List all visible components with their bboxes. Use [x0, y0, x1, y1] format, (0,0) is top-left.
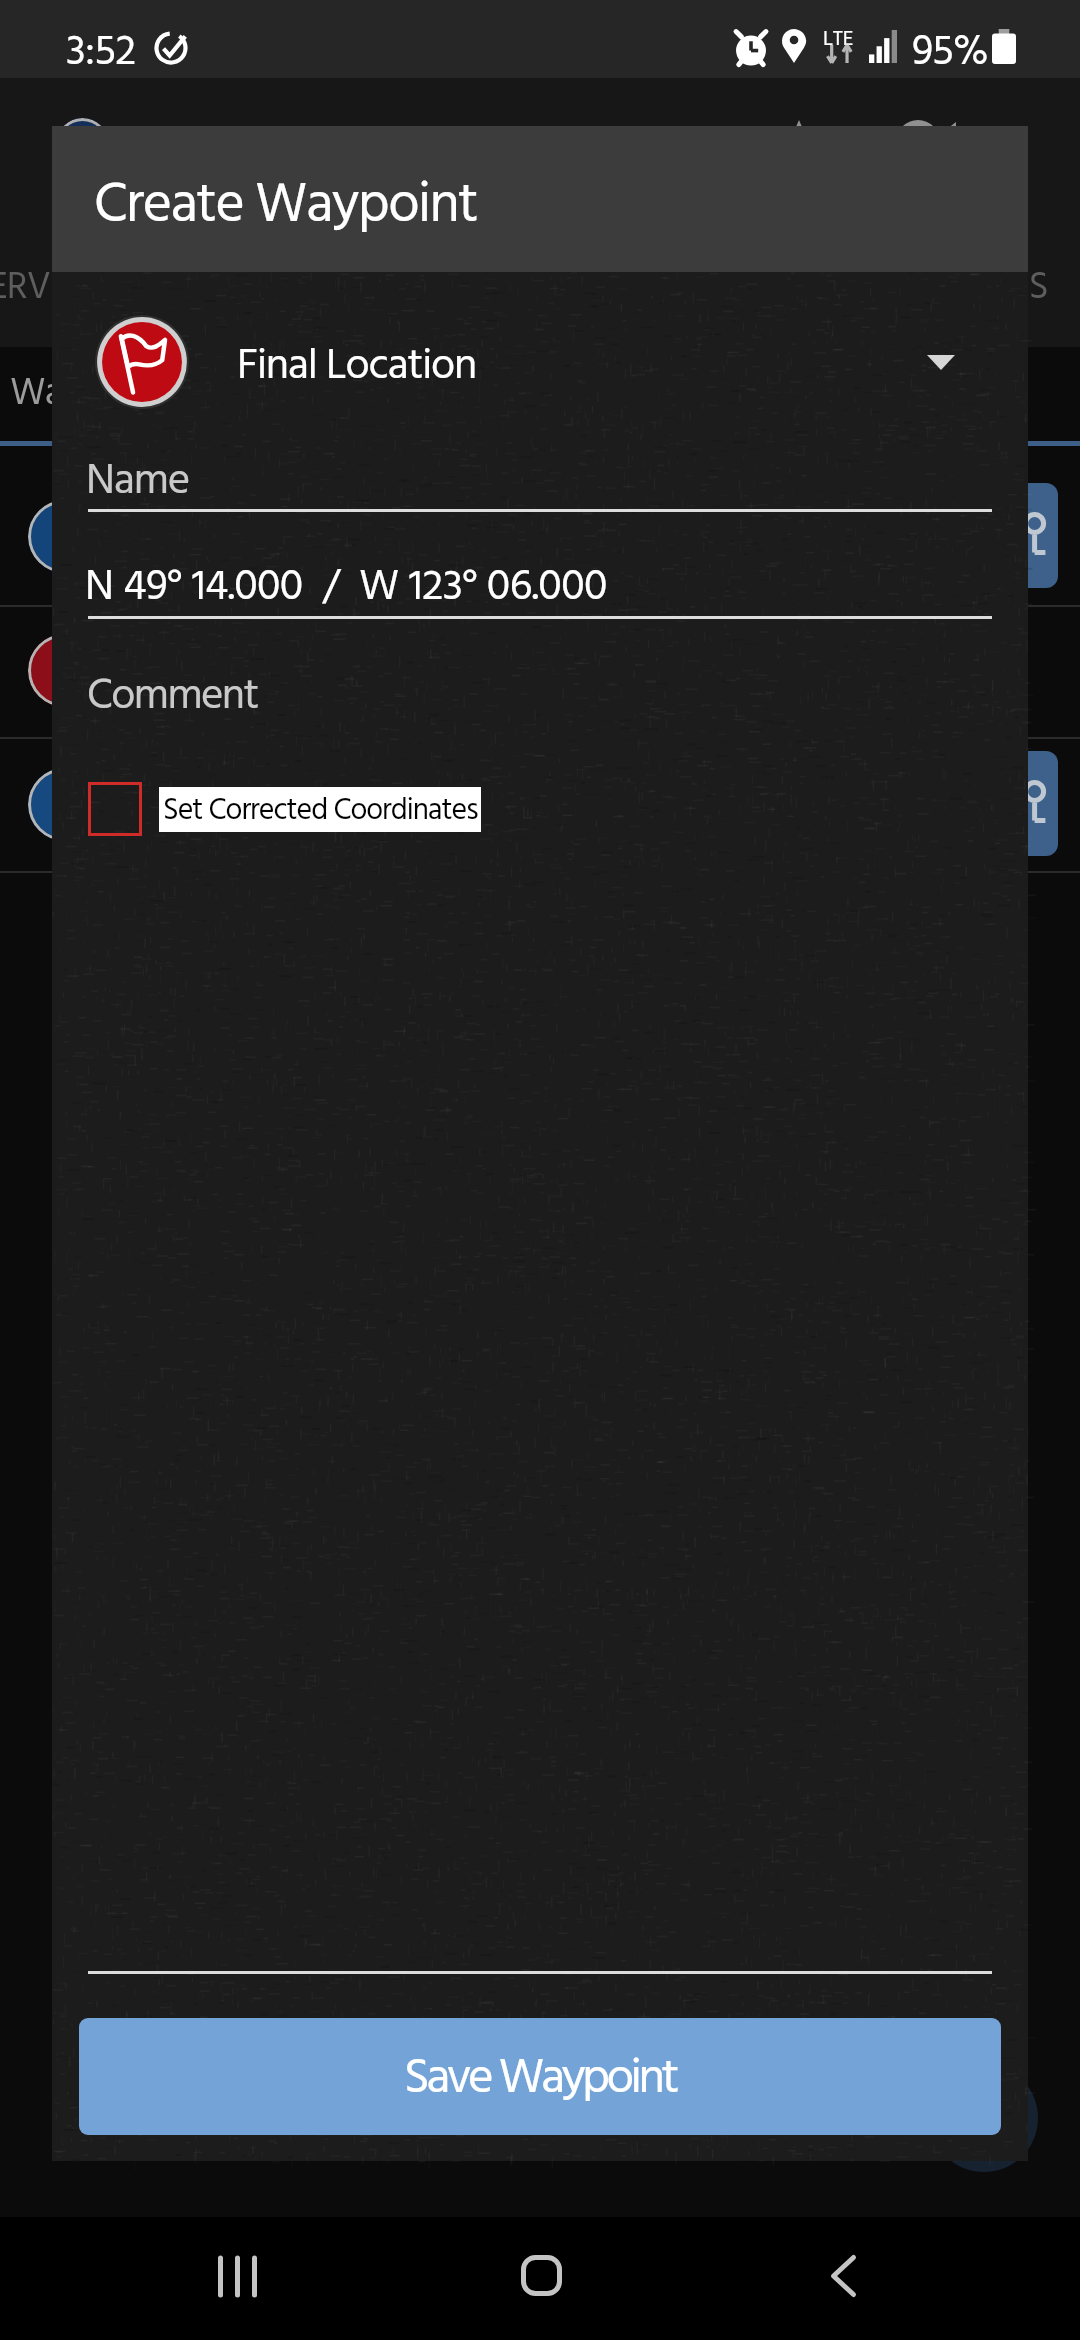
- staticText: RESERVE: [0, 258, 68, 319]
- staticText: Save Waypoint: [404, 2040, 677, 2118]
- staticText: Name: [86, 448, 190, 517]
- staticText: FOUND: [430, 258, 546, 319]
- staticText: N 49° 14.000 / W 123° 06.000: [85, 554, 607, 623]
- staticText: LTE: [823, 23, 854, 57]
- staticText: 3:52: [66, 20, 136, 87]
- staticText: 95%: [912, 20, 988, 87]
- button[interactable]: N 49° 14.000 / W 123° 06.000: [88, 542, 992, 619]
- staticText: Comment: [87, 663, 258, 732]
- button[interactable]: Name: [88, 436, 992, 512]
- button[interactable]: Back: [790, 2233, 898, 2323]
- button[interactable]: Save Waypoint: [79, 2018, 1001, 2135]
- button[interactable]: Recent apps: [183, 2233, 291, 2323]
- staticText: Create Waypoint: [94, 162, 478, 252]
- button[interactable]: Home: [487, 2233, 595, 2323]
- staticText: Final Location: [237, 333, 477, 402]
- button[interactable]: Comment: [88, 651, 992, 729]
- staticText: Waypoints: [10, 364, 177, 425]
- staticText: CACHES: [920, 258, 1048, 319]
- button[interactable]: Set Corrected Coordinates: [88, 776, 536, 842]
- staticText: Set Corrected Coordinates: [163, 787, 478, 832]
- button[interactable]: Final Location: [52, 288, 1028, 436]
